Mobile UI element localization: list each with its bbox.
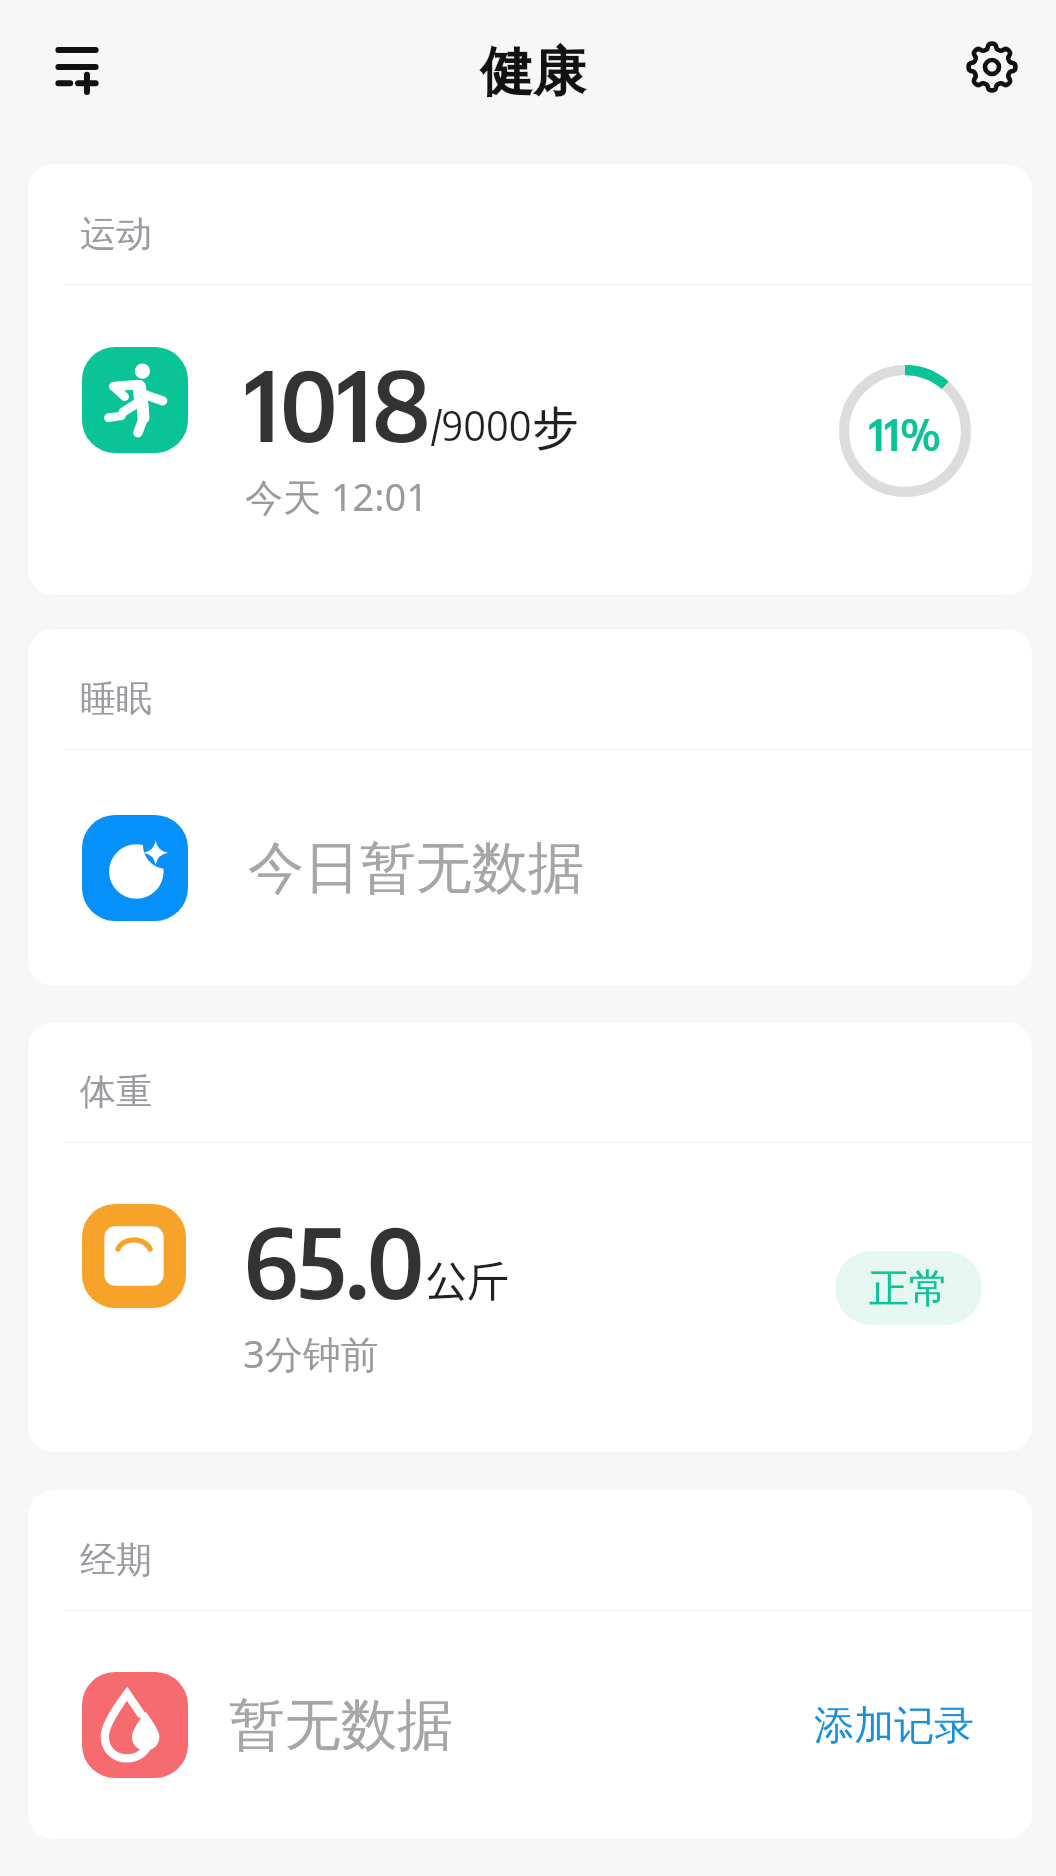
staticText: 公斤 bbox=[425, 1248, 510, 1309]
staticText: 65.0 bbox=[243, 1200, 425, 1320]
staticText: 1018 bbox=[245, 343, 431, 463]
staticText: 步 bbox=[532, 391, 579, 459]
staticText: 运动 bbox=[80, 211, 152, 256]
staticText: 今天 12:01 bbox=[245, 470, 429, 522]
button[interactable]: 65.0 bbox=[28, 1143, 1032, 1452]
staticText: 正常 bbox=[869, 1263, 949, 1313]
button[interactable]: 添加记录 bbox=[808, 1686, 980, 1764]
staticText: 睡眠 bbox=[80, 676, 152, 721]
button[interactable]: 1018 bbox=[28, 285, 1032, 595]
staticText: 经期 bbox=[80, 1537, 152, 1582]
staticText: 今日暂无数据 bbox=[248, 833, 584, 904]
button[interactable]: Add record bbox=[28, 24, 120, 116]
staticText: 添加记录 bbox=[814, 1700, 974, 1750]
button[interactable]: Settings bbox=[946, 24, 1038, 116]
button[interactable]: 暂无数据 bbox=[28, 1611, 1032, 1839]
staticText: 体重 bbox=[80, 1069, 152, 1114]
button[interactable]: 正常 bbox=[835, 1251, 982, 1325]
staticText: 3分钟前 bbox=[243, 1327, 379, 1379]
staticText: 11% bbox=[869, 407, 941, 461]
staticText: /9000 bbox=[431, 401, 532, 450]
button[interactable]: 今日暂无数据 bbox=[28, 750, 1032, 986]
staticText: 健康 bbox=[480, 39, 586, 106]
staticText: 暂无数据 bbox=[229, 1690, 453, 1761]
